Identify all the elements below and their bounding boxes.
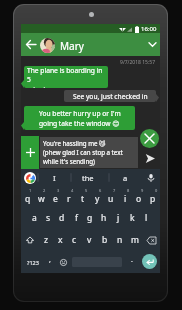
button[interactable]: f <box>69 207 83 229</box>
staticText: r <box>67 193 71 205</box>
staticText: c <box>72 234 77 246</box>
staticText: i <box>124 193 127 205</box>
button[interactable]: d <box>55 207 69 229</box>
button[interactable]: Cancel sending <box>140 129 159 148</box>
staticText: 9 <box>141 188 144 193</box>
button[interactable]: the <box>71 169 104 186</box>
staticText: t <box>81 193 85 205</box>
staticText: s <box>46 212 51 224</box>
staticText: ?123 <box>27 259 39 266</box>
button[interactable]: , <box>43 251 57 273</box>
staticText: See you, just checked in <box>73 92 148 101</box>
button[interactable]: Voice input <box>144 169 158 186</box>
staticText: v <box>87 234 92 246</box>
button[interactable]: 8 <box>118 186 132 207</box>
button[interactable]: Back <box>23 33 39 56</box>
staticText: y <box>95 193 100 205</box>
button[interactable]: l <box>139 207 153 229</box>
staticText: 3 <box>57 188 60 193</box>
staticText: . <box>131 255 133 265</box>
staticText: d <box>59 212 65 224</box>
staticText: m <box>131 234 139 246</box>
staticText: a <box>123 173 128 183</box>
staticText: l <box>145 212 148 224</box>
button[interactable]: The plane is boarding in 5 minutes. <box>24 66 108 88</box>
staticText: 1 <box>29 188 32 193</box>
button[interactable]: c <box>67 229 82 251</box>
button[interactable]: m <box>127 229 142 251</box>
button[interactable]: ?123 <box>23 251 42 273</box>
button[interactable]: Google <box>24 172 36 184</box>
staticText: a <box>32 212 37 224</box>
staticText: e <box>53 193 58 205</box>
button[interactable]: 6 <box>90 186 104 207</box>
button[interactable]: Send <box>141 150 158 167</box>
staticText: j <box>117 212 120 224</box>
staticText: w <box>38 193 45 205</box>
staticText: z <box>44 234 48 246</box>
button[interactable]: You better hurry up or I'm going take th… <box>24 106 135 130</box>
button[interactable]: s <box>41 207 55 229</box>
button[interactable]: 3 <box>48 186 62 207</box>
staticText: 0 <box>155 188 158 193</box>
staticText: 4 <box>71 188 74 193</box>
staticText: 5 <box>85 188 88 193</box>
staticText: 8 <box>127 188 130 193</box>
button[interactable]: I <box>38 169 71 186</box>
staticText: 7 <box>113 188 116 193</box>
staticText: q <box>25 193 31 205</box>
button[interactable]: Enter <box>142 254 157 269</box>
staticText: 2 <box>43 188 46 193</box>
staticText: u <box>108 193 114 205</box>
button[interactable]: v <box>82 229 97 251</box>
staticText: 16:00 <box>141 25 157 33</box>
staticText: You're hassling me 😼 (phew glad I can st… <box>43 139 123 166</box>
button[interactable]: 7 <box>104 186 118 207</box>
button[interactable]: 5 <box>76 186 90 207</box>
staticText: x <box>58 234 63 246</box>
button[interactable]: a <box>28 207 41 229</box>
button[interactable]: Backspace <box>142 229 160 251</box>
staticText: g <box>87 212 93 224</box>
button[interactable]: . <box>125 251 138 273</box>
staticText: n <box>117 234 123 246</box>
button[interactable]: 4 <box>62 186 76 207</box>
button[interactable]: Emoji <box>56 251 70 273</box>
button[interactable]: Expand details <box>144 33 160 56</box>
staticText: Mary <box>60 39 84 53</box>
button[interactable]: k <box>125 207 139 229</box>
button[interactable]: b <box>97 229 112 251</box>
button[interactable]: x <box>53 229 67 251</box>
button[interactable]: You're hassling me 😼 (phew glad I can st… <box>40 137 138 168</box>
staticText: 6 <box>99 188 102 193</box>
staticText: k <box>130 212 135 224</box>
button[interactable]: 9 <box>132 186 146 207</box>
button[interactable]: Shift <box>21 229 39 251</box>
button[interactable]: Attach <box>21 136 39 169</box>
staticText: o <box>136 193 142 205</box>
staticText: f <box>75 212 78 224</box>
button[interactable]: j <box>111 207 125 229</box>
staticText: the <box>82 173 94 183</box>
button[interactable]: 2 <box>34 186 48 207</box>
button[interactable]: z <box>39 229 53 251</box>
staticText: I <box>53 173 56 183</box>
button[interactable]: g <box>83 207 97 229</box>
button[interactable]: a <box>109 169 142 186</box>
button[interactable]: n <box>112 229 127 251</box>
staticText: The plane is boarding in 5 minutes. <box>27 66 106 88</box>
button[interactable]: 0 <box>146 186 160 207</box>
staticText: , <box>49 255 51 265</box>
staticText: p <box>150 193 156 205</box>
button[interactable]: See you, just checked in <box>64 90 156 102</box>
button[interactable]: h <box>97 207 111 229</box>
button[interactable]: 1 <box>21 186 34 207</box>
staticText: h <box>101 212 107 224</box>
staticText: b <box>102 234 108 246</box>
staticText: 9/7/2018 15:57 <box>21 59 155 66</box>
staticText: You better hurry up or I'm going take th… <box>39 109 121 128</box>
